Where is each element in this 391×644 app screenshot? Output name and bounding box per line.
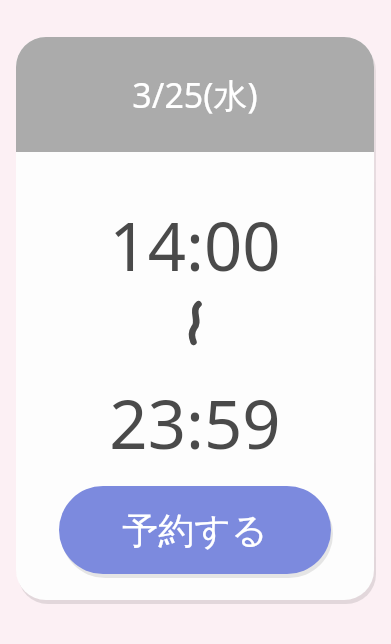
button[interactable]: 3/25(水) (16, 37, 374, 152)
staticText: 23:59 (109, 377, 281, 468)
button[interactable]: 予約する (59, 486, 331, 574)
staticText: 3/25(水) (132, 72, 258, 118)
staticText: 14:00 (109, 199, 281, 290)
staticText: 予約する (122, 508, 268, 553)
